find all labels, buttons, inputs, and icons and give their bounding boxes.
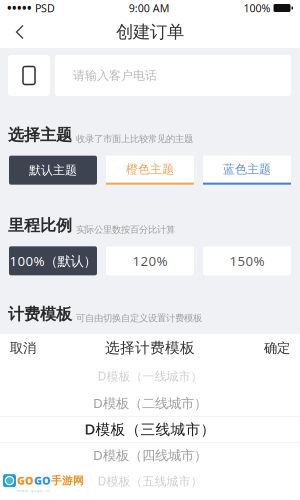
staticText: 蓝色主题	[223, 162, 271, 176]
staticText: 可自由切换自定义设置计费模板	[76, 312, 202, 324]
staticText: 创建订单	[116, 21, 184, 43]
staticText: 手游网	[51, 474, 84, 487]
button[interactable]: Back	[6, 18, 34, 46]
staticText: w w w . g o g o . i n	[17, 488, 49, 493]
button[interactable]: 蓝色主题	[203, 156, 291, 185]
staticText: GO	[34, 473, 51, 488]
staticText: 里程比例	[8, 216, 72, 235]
staticText: D模板（四线城市）	[93, 446, 207, 464]
staticText: 取消	[10, 340, 36, 356]
button[interactable]: 橙色主题	[106, 156, 194, 185]
staticText: •••••	[7, 0, 32, 16]
button[interactable]: 取消	[2, 335, 44, 361]
staticText: 120%	[132, 252, 167, 270]
staticText: 确定	[264, 340, 290, 356]
staticText: 100%	[243, 1, 270, 15]
button[interactable]: 请输入客户电话	[55, 55, 291, 96]
staticText: 收录了市面上比较常见的主题	[76, 133, 193, 145]
staticText: 请输入客户电话	[73, 68, 157, 83]
button[interactable]: 150%	[203, 246, 291, 275]
staticText: PSD	[32, 1, 55, 15]
staticText: 实际公里数按百分比计算	[76, 224, 175, 235]
staticText: 橙色主题	[126, 162, 174, 176]
staticText: 计费模板	[8, 304, 72, 324]
button[interactable]: Phone	[8, 55, 50, 96]
staticText: D模板（二线城市）	[93, 394, 207, 412]
button[interactable]: 100%（默认）	[9, 246, 97, 275]
staticText: 选择主题	[8, 125, 72, 145]
staticText: 150%	[229, 252, 264, 270]
staticText: 9:00 AM	[129, 1, 170, 15]
staticText: D模板（五线城市）	[97, 473, 202, 489]
staticText: 默认主题	[29, 163, 77, 177]
button[interactable]: 确定	[256, 335, 298, 361]
staticText: 100%（默认）	[9, 252, 96, 270]
staticText: GO	[17, 473, 34, 488]
button[interactable]: 120%	[106, 246, 194, 275]
staticText: 选择计费模板	[105, 339, 195, 357]
staticText: D模板（一线城市）	[97, 368, 202, 384]
button[interactable]: 默认主题	[9, 156, 97, 185]
staticText: D模板（三线城市）	[84, 419, 215, 439]
